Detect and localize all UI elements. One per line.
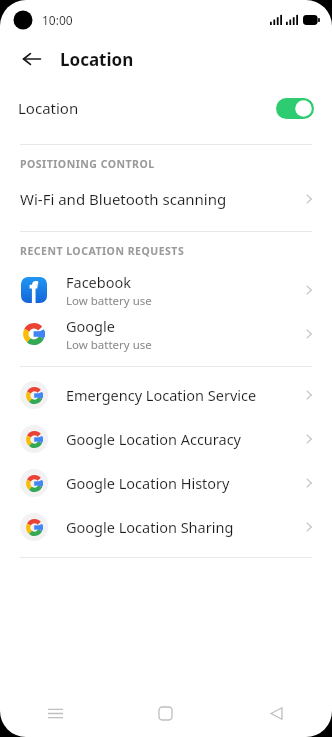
staticText: Google (66, 316, 115, 336)
staticText: Google Location Sharing (66, 517, 302, 537)
staticText: Emergency Location Service (66, 385, 302, 405)
button[interactable]: Google Location Sharing (0, 505, 332, 549)
staticText: 10:00 (42, 12, 73, 28)
staticText: Low battery use (66, 337, 152, 353)
staticText: Location (60, 48, 134, 71)
button[interactable]: Google Location Accuracy (0, 417, 332, 461)
button[interactable]: Wi-Fi and Bluetooth scanning (0, 181, 332, 217)
button[interactable]: Location (0, 80, 332, 136)
staticText: Google Location Accuracy (66, 429, 302, 449)
staticText: RECENT LOCATION REQUESTS (20, 244, 185, 258)
button[interactable]: Recent apps (0, 689, 110, 737)
staticText: POSITIONING CONTROL (20, 157, 155, 171)
button[interactable]: Google Location History (0, 461, 332, 505)
staticText: Facebook (66, 272, 132, 292)
button[interactable]: Emergency Location Service (0, 373, 332, 417)
button[interactable]: Home (110, 689, 221, 737)
staticText: Wi-Fi and Bluetooth scanning (20, 189, 302, 209)
button[interactable]: Facebook (0, 268, 332, 312)
button[interactable]: Google (0, 312, 332, 356)
staticText: Location (18, 98, 276, 118)
button[interactable]: Back (18, 45, 46, 73)
staticText: Low battery use (66, 293, 152, 309)
staticText: Google Location History (66, 473, 302, 493)
button[interactable]: Back (221, 689, 332, 737)
